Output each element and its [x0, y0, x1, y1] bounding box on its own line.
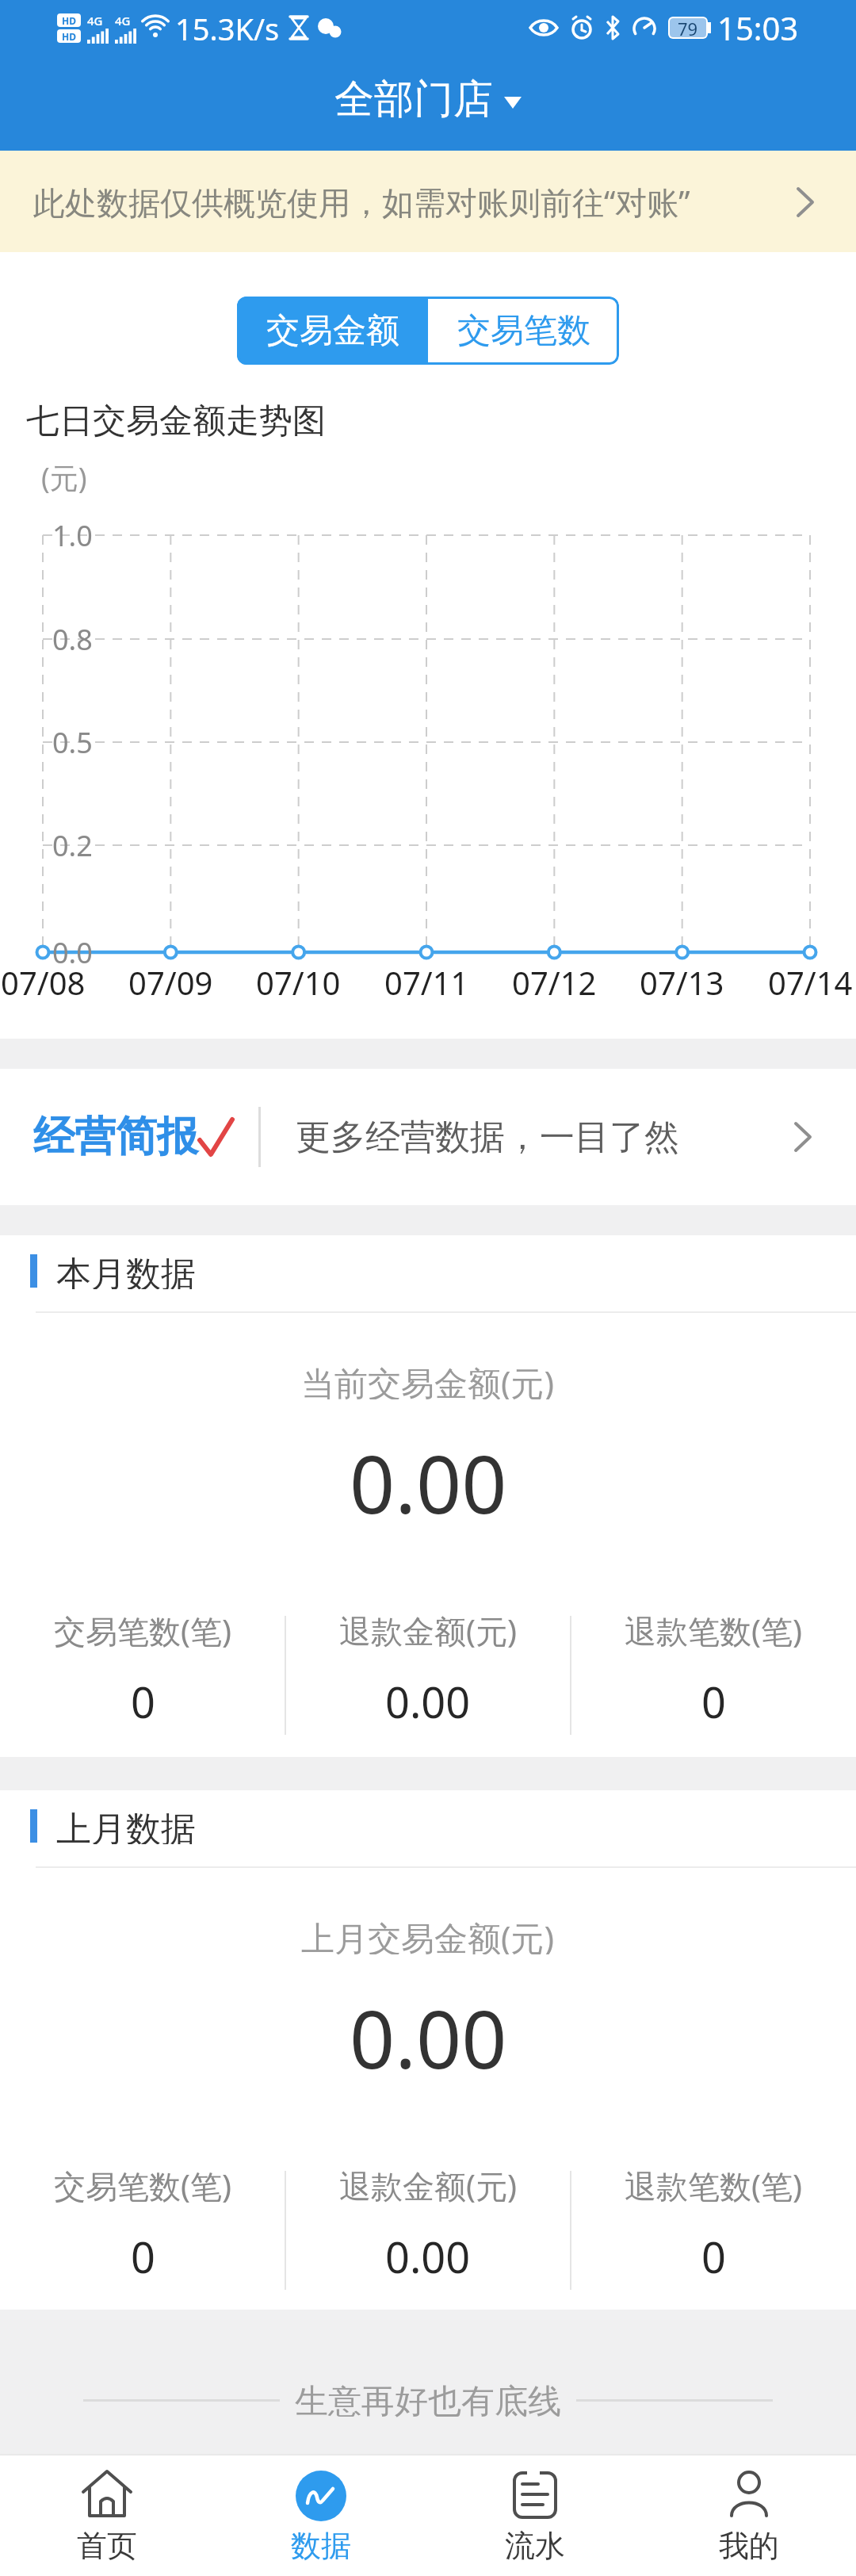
button[interactable]: 交易金额 — [237, 297, 428, 365]
staticText: 经营简报 — [33, 1111, 198, 1163]
staticText: 交易笔数(笔) — [54, 1609, 231, 1650]
staticText: (元) — [41, 458, 87, 497]
staticText: 0.00 — [385, 1672, 471, 1726]
staticText: 交易笔数(笔) — [54, 2164, 231, 2205]
staticText: 15:03 — [717, 6, 799, 49]
staticText: 首页 — [77, 2527, 137, 2565]
staticText: 0.00 — [350, 1429, 507, 1524]
staticText: 0 — [701, 1672, 726, 1726]
staticText: 07/14 — [768, 961, 853, 1001]
staticText: 0 — [131, 1672, 155, 1726]
staticText: HD — [62, 14, 76, 27]
staticText: 07/13 — [640, 961, 724, 1001]
staticText: 全部门店 — [334, 75, 493, 124]
staticText: 上月交易金额(元) — [301, 1915, 555, 1954]
staticText: 交易笔数 — [457, 310, 590, 352]
button[interactable]: 全部门店 — [334, 75, 522, 124]
staticText: 07/09 — [128, 961, 213, 1001]
staticText: 数据 — [291, 2527, 351, 2565]
button[interactable]: 经营简报 — [0, 1069, 856, 1205]
staticText: 退款笔数(笔) — [625, 2164, 802, 2205]
staticText: 七日交易金额走势图 — [26, 400, 326, 440]
staticText: 07/08 — [1, 961, 86, 1001]
staticText: 退款金额(元) — [339, 1609, 517, 1650]
staticText: 0.00 — [385, 2227, 471, 2281]
staticText: 0 — [701, 2227, 726, 2281]
staticText: 4G — [115, 13, 131, 29]
staticText: 退款笔数(笔) — [625, 1609, 802, 1650]
staticText: 此处数据仅供概览使用，如需对账则前往“对账” — [33, 180, 690, 224]
staticText: 流水 — [505, 2527, 565, 2565]
staticText: 07/11 — [384, 961, 469, 1001]
staticText: 本月数据 — [56, 1253, 196, 1289]
staticText: 79 — [678, 17, 698, 39]
staticText: 07/10 — [256, 961, 341, 1001]
staticText: 更多经营数据，一目了然 — [296, 1116, 679, 1159]
staticText: HD — [62, 30, 76, 43]
staticText: 0 — [131, 2227, 155, 2281]
staticText: 4G — [87, 13, 103, 29]
staticText: 0.0 — [52, 933, 93, 972]
staticText: 退款金额(元) — [339, 2164, 517, 2205]
staticText: 交易金额 — [266, 310, 399, 352]
staticText: 0.00 — [350, 1984, 507, 2079]
staticText: 上月数据 — [56, 1808, 196, 1844]
staticText: 我的 — [719, 2527, 779, 2565]
staticText: 07/12 — [512, 961, 597, 1001]
button[interactable]: 此处数据仅供概览使用，如需对账则前往“对账” — [0, 151, 856, 252]
button[interactable]: 交易笔数 — [428, 297, 619, 365]
staticText: 0.5 — [52, 723, 93, 762]
staticText: 15.3K/s — [175, 8, 280, 48]
button[interactable] — [214, 2454, 428, 2576]
staticText: 当前交易金额(元) — [301, 1360, 555, 1399]
staticText: 0.8 — [52, 620, 93, 659]
staticText: 0.2 — [52, 826, 93, 865]
button[interactable] — [428, 2454, 642, 2576]
staticText: 1.0 — [52, 516, 93, 555]
staticText: 生意再好也有底线 — [295, 2381, 561, 2421]
button[interactable] — [642, 2454, 856, 2576]
button[interactable] — [0, 2454, 214, 2576]
